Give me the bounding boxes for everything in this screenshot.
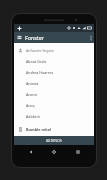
button[interactable]: More options [88, 32, 94, 43]
staticText: Fonster [25, 34, 44, 41]
button[interactable]: AKIRNOS [14, 136, 94, 145]
staticText: Andrea Hoarros [26, 70, 54, 75]
staticText: Antena [26, 81, 39, 86]
staticText: Aabbrrii [26, 114, 40, 119]
button[interactable]: Back [24, 145, 38, 158]
button[interactable]: Andrea Hoarros [14, 67, 94, 78]
button[interactable]: Aconci [14, 89, 94, 100]
button[interactable]: Aabbrrii [14, 111, 94, 122]
staticText: Aceq [26, 103, 35, 108]
staticText: Aconci [26, 92, 38, 97]
button[interactable]: Home [47, 145, 61, 158]
staticText: Anfuente llegate [26, 48, 54, 53]
button[interactable]: Recent apps [71, 145, 85, 158]
button[interactable]: Antena [14, 78, 94, 89]
button[interactable]: Aceq [14, 100, 94, 111]
staticText: AKIRNOS [46, 138, 62, 143]
button[interactable]: Fonster [25, 32, 88, 43]
button[interactable]: About Grolv [14, 56, 94, 67]
button[interactable]: Open navigation drawer [16, 32, 23, 43]
staticText: Bumble rebel [26, 127, 52, 132]
button[interactable]: Anfuente llegate [14, 45, 94, 56]
button[interactable]: Bumble rebel [14, 123, 94, 135]
staticText: About Grolv [26, 59, 47, 64]
